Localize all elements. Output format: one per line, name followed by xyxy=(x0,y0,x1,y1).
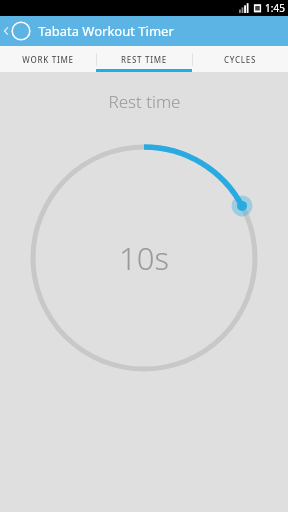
button[interactable]: REST TIME xyxy=(96,46,192,72)
staticText: 1:45 xyxy=(265,1,285,15)
button[interactable]: 10s xyxy=(19,133,269,383)
staticText: Tabata Workout Timer xyxy=(38,22,174,40)
button[interactable]: WORK TIME xyxy=(0,46,96,72)
button[interactable]: Navigate up xyxy=(0,21,33,41)
staticText: 10s xyxy=(119,237,169,279)
staticText: Rest time xyxy=(108,90,181,113)
button[interactable]: CYCLES xyxy=(192,46,288,72)
staticText: CYCLES xyxy=(224,54,256,65)
staticText: WORK TIME xyxy=(22,54,74,65)
staticText: REST TIME xyxy=(121,54,167,65)
